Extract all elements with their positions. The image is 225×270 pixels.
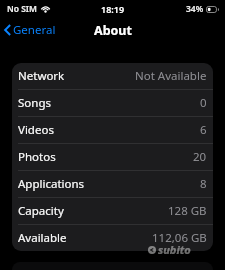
staticText: Songs — [18, 95, 51, 111]
staticText: Photos — [18, 149, 56, 165]
button[interactable]: Photos — [12, 144, 213, 170]
button[interactable]: Available — [12, 225, 213, 251]
staticText: 8 — [200, 176, 207, 192]
staticText: General — [13, 22, 56, 38]
staticText: Capacity — [18, 203, 64, 219]
staticText: About — [94, 22, 132, 39]
staticText: 20 — [193, 149, 207, 165]
button[interactable]: Videos — [12, 117, 213, 143]
staticText: Videos — [18, 122, 54, 138]
button[interactable]: Applications — [12, 171, 213, 197]
staticText: 6 — [200, 122, 207, 138]
button[interactable]: Songs — [12, 90, 213, 116]
button[interactable]: Capacity — [12, 198, 213, 224]
staticText: 128 GB — [168, 203, 207, 219]
staticText: 112,06 GB — [152, 230, 207, 246]
button[interactable]: Back to General — [0, 19, 62, 41]
staticText: 18:19 — [101, 3, 125, 15]
staticText: No SIM — [7, 3, 37, 15]
staticText: Network — [18, 68, 65, 84]
staticText: Applications — [18, 176, 85, 192]
staticText: 34% — [186, 3, 204, 15]
staticText: Not Available — [135, 68, 207, 84]
staticText: 0 — [200, 95, 207, 111]
staticText: subito — [158, 242, 191, 257]
button[interactable]: Network — [12, 63, 213, 89]
other: Back to General — [4, 24, 11, 36]
staticText: Available — [18, 230, 67, 246]
